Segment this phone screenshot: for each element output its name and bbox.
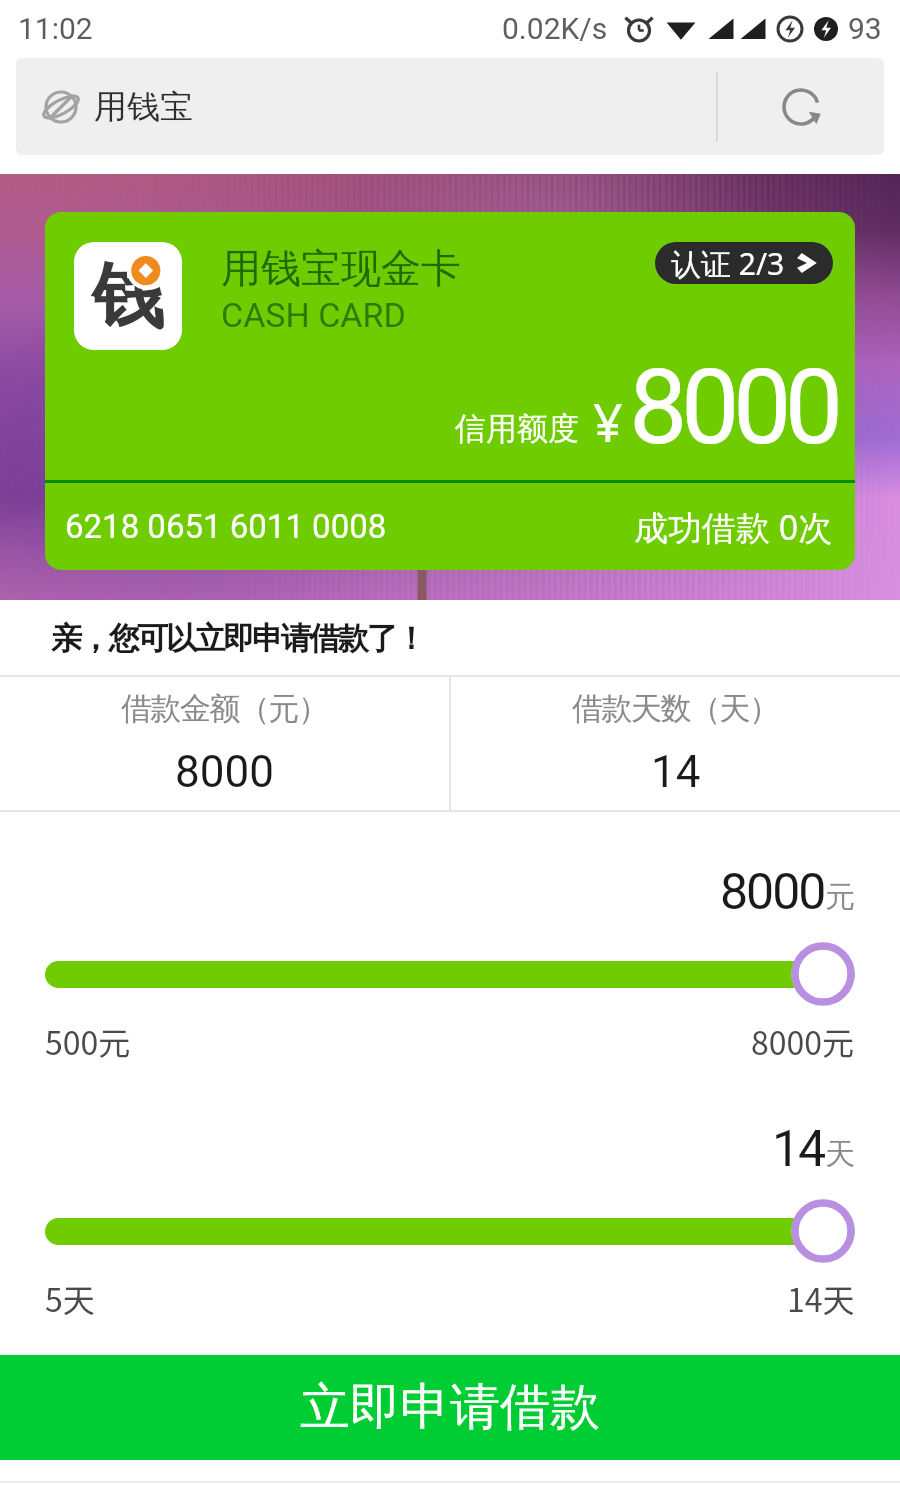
- staticText: 500元: [45, 1018, 131, 1064]
- staticText: 8000: [720, 863, 825, 922]
- staticText: 天: [825, 1135, 855, 1173]
- button[interactable]: 借款金额（元）: [0, 677, 449, 810]
- staticText: 14: [651, 746, 701, 798]
- staticText: 成功借款 0次: [634, 504, 833, 550]
- staticText: 6218 0651 6011 0008: [65, 507, 387, 546]
- staticText: 借款金额（元）: [121, 689, 328, 728]
- staticText: 认证 2/3: [671, 243, 785, 284]
- staticText: 立即申请借款: [300, 1376, 600, 1439]
- button[interactable]: Loan duration slider: [791, 1199, 855, 1263]
- staticText: 5天: [45, 1275, 95, 1321]
- staticText: 亲，您可以立即申请借款了！: [51, 619, 425, 658]
- staticText: 元: [825, 878, 855, 916]
- staticText: ¥: [593, 386, 623, 457]
- staticText: 8000: [175, 746, 274, 798]
- staticText: 0.02K/s: [502, 11, 608, 46]
- button[interactable]: Loan amount slider: [791, 942, 855, 1006]
- staticText: 信用额度: [455, 409, 579, 448]
- staticText: 借款天数（天）: [572, 689, 779, 728]
- staticText: 14天: [787, 1275, 855, 1321]
- button[interactable]: 借款天数（天）: [451, 677, 900, 810]
- staticText: 11:02: [18, 11, 93, 46]
- staticText: CASH CARD: [221, 295, 406, 335]
- staticText: 14: [772, 1120, 825, 1179]
- button[interactable]: 认证 2/3: [655, 242, 833, 284]
- staticText: 用钱宝: [94, 86, 193, 128]
- button[interactable]: 用钱宝: [16, 58, 716, 155]
- button[interactable]: Refresh: [718, 58, 884, 155]
- staticText: 8000元: [751, 1018, 855, 1064]
- button[interactable]: 立即申请借款: [0, 1355, 900, 1460]
- staticText: 用钱宝现金卡: [221, 243, 461, 293]
- staticText: 钱: [92, 252, 164, 343]
- staticText: 93: [848, 11, 882, 46]
- staticText: 8000: [629, 347, 837, 469]
- button[interactable]: 钱: [45, 212, 855, 570]
